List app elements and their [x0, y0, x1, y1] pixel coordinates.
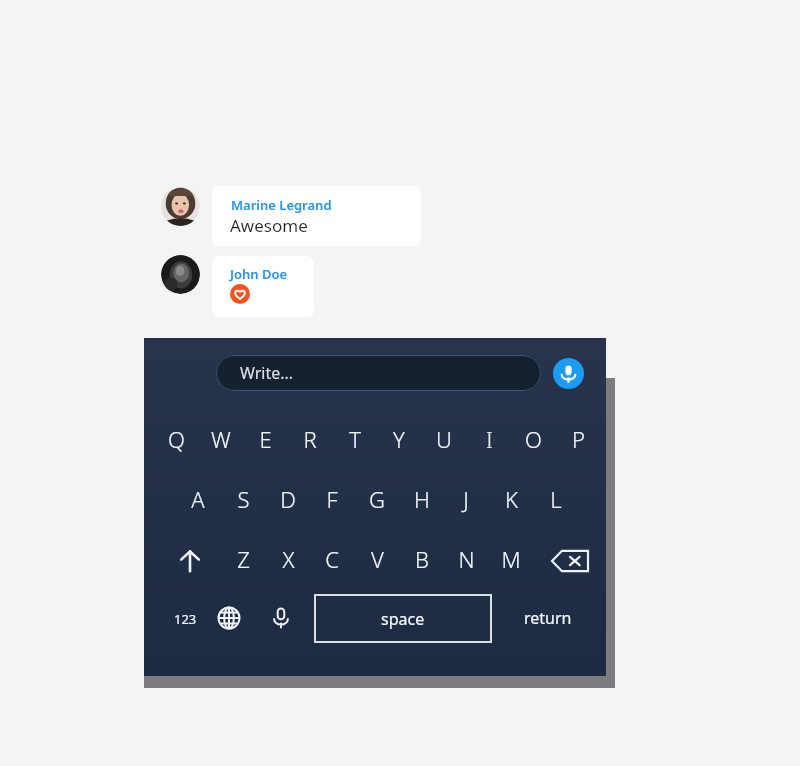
- button[interactable]: G: [357, 481, 397, 517]
- staticText: space: [381, 608, 425, 630]
- button[interactable]: 123: [166, 605, 204, 633]
- button[interactable]: Write...: [216, 355, 541, 391]
- button[interactable]: P: [558, 421, 598, 457]
- button[interactable]: Camera: [314, 358, 348, 392]
- staticText: P: [572, 424, 585, 454]
- staticText: H: [414, 484, 430, 514]
- button[interactable]: John Doe: [212, 256, 314, 317]
- staticText: I: [486, 424, 493, 454]
- staticText: R: [303, 424, 317, 454]
- button[interactable]: H: [402, 481, 442, 517]
- button[interactable]: N: [446, 541, 486, 577]
- staticText: Q: [168, 424, 185, 454]
- staticText: F: [326, 484, 338, 514]
- button[interactable]: Q: [156, 421, 196, 457]
- button[interactable]: J: [446, 481, 486, 517]
- button[interactable]: W: [201, 421, 241, 457]
- button[interactable]: L: [536, 481, 576, 517]
- button[interactable]: I: [469, 421, 509, 457]
- button[interactable]: Marine Legrand: [212, 186, 421, 246]
- staticText: 123: [174, 610, 197, 628]
- button[interactable]: T: [335, 421, 375, 457]
- button[interactable]: U: [424, 421, 464, 457]
- staticText: V: [371, 544, 384, 574]
- staticText: M: [501, 544, 521, 574]
- staticText: return: [524, 607, 572, 629]
- button[interactable]: Backspace: [550, 546, 590, 576]
- button[interactable]: D: [268, 481, 308, 517]
- button[interactable]: Z: [223, 541, 263, 577]
- button[interactable]: R: [290, 421, 330, 457]
- button[interactable]: Dictate: [266, 603, 296, 633]
- staticText: X: [282, 544, 295, 574]
- button[interactable]: Change language: [214, 603, 244, 633]
- button[interactable]: John Doe avatar: [161, 255, 200, 294]
- button[interactable]: F: [312, 481, 352, 517]
- staticText: E: [259, 424, 272, 454]
- staticText: L: [550, 484, 562, 514]
- button[interactable]: Marine Legrand avatar: [161, 187, 200, 226]
- button[interactable]: A: [178, 481, 218, 517]
- button[interactable]: X: [268, 541, 308, 577]
- button[interactable]: Like: [230, 284, 250, 304]
- button[interactable]: E: [245, 421, 285, 457]
- staticText: Awesome: [230, 214, 308, 237]
- staticText: O: [525, 424, 542, 454]
- button[interactable]: space: [314, 594, 492, 643]
- button[interactable]: O: [513, 421, 553, 457]
- staticText: U: [436, 424, 452, 454]
- staticText: G: [369, 484, 385, 514]
- staticText: D: [280, 484, 296, 514]
- staticText: Marine Legrand: [231, 196, 332, 214]
- button[interactable]: B: [402, 541, 442, 577]
- staticText: J: [463, 484, 469, 514]
- staticText: Write...: [240, 362, 294, 384]
- staticText: N: [458, 544, 475, 574]
- button[interactable]: Y: [379, 421, 419, 457]
- staticText: T: [349, 424, 361, 454]
- staticText: S: [237, 484, 250, 514]
- staticText: K: [505, 484, 518, 514]
- button[interactable]: M: [491, 541, 531, 577]
- button[interactable]: C: [312, 541, 352, 577]
- button[interactable]: Voice input: [553, 358, 584, 389]
- staticText: Y: [393, 424, 405, 454]
- button[interactable]: Shift: [173, 544, 207, 578]
- button[interactable]: K: [491, 481, 531, 517]
- staticText: A: [191, 484, 205, 514]
- staticText: C: [325, 544, 339, 574]
- staticText: W: [211, 424, 231, 454]
- button[interactable]: S: [223, 481, 263, 517]
- button[interactable]: return: [510, 604, 586, 632]
- staticText: B: [415, 544, 429, 574]
- staticText: John Doe: [230, 265, 288, 283]
- staticText: Z: [237, 544, 250, 574]
- button[interactable]: V: [357, 541, 397, 577]
